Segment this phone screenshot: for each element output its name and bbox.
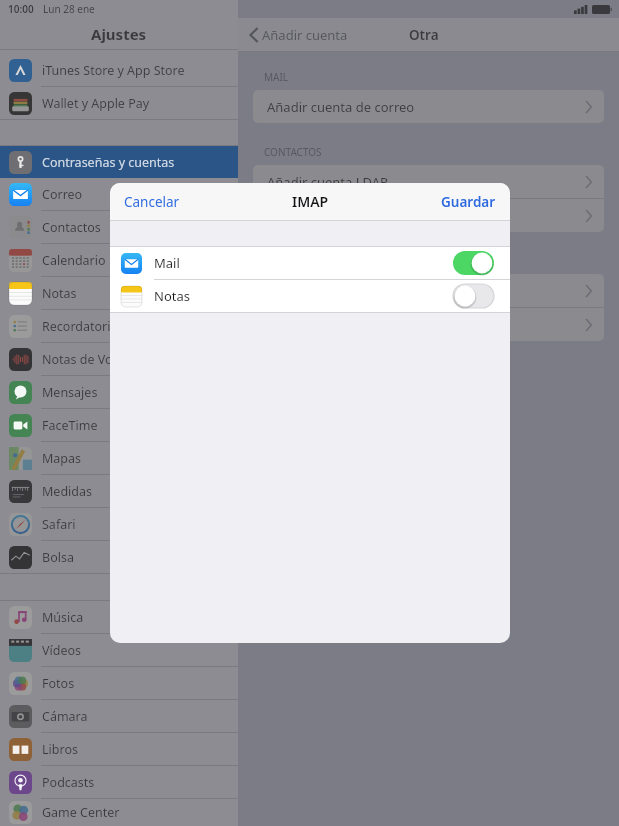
staticText: Notas bbox=[154, 287, 190, 305]
staticText: Otra bbox=[409, 26, 439, 44]
button[interactable]: Añadir calendario suscrito bbox=[253, 308, 604, 341]
button[interactable]: Contraseñas y cuentas bbox=[0, 146, 238, 178]
staticText: Wallet y Apple Pay bbox=[42, 95, 150, 112]
button[interactable]: Bolsa bbox=[0, 541, 238, 573]
button[interactable]: Libros bbox=[0, 733, 238, 765]
staticText: Fotos bbox=[42, 675, 75, 692]
staticText: Música bbox=[42, 609, 84, 626]
staticText: Notas bbox=[42, 285, 77, 302]
button[interactable]: Podcasts bbox=[0, 766, 238, 798]
staticText: Contraseñas y cuentas bbox=[42, 154, 175, 171]
staticText: FaceTime bbox=[42, 417, 98, 434]
staticText: Vídeos bbox=[42, 642, 82, 659]
staticText: Mapas bbox=[42, 450, 82, 467]
button[interactable]: Fotos bbox=[0, 667, 238, 699]
button[interactable]: Añadir cuenta LDAP bbox=[253, 165, 604, 198]
button[interactable]: Recordatorios bbox=[0, 310, 238, 342]
button[interactable]: Cancelar bbox=[110, 186, 194, 218]
staticText: Medidas bbox=[42, 483, 92, 500]
staticText: Contactos bbox=[42, 219, 101, 236]
staticText: Mensajes bbox=[42, 384, 98, 401]
staticText: Podcasts bbox=[42, 774, 95, 791]
staticText: Añadir cuenta de correo bbox=[267, 98, 415, 116]
staticText: CONTACTOS bbox=[264, 145, 322, 159]
button[interactable]: Añadir cuenta bbox=[248, 23, 350, 47]
button[interactable]: Música bbox=[0, 601, 238, 633]
staticText: Lun 28 ene bbox=[43, 2, 95, 16]
button[interactable]: Mensajes bbox=[0, 376, 238, 408]
button[interactable]: Mapas bbox=[0, 442, 238, 474]
staticText: Notas de Voz bbox=[42, 351, 119, 368]
button[interactable]: Vídeos bbox=[0, 634, 238, 666]
button[interactable]: iTunes Store y App Store bbox=[0, 54, 238, 86]
button[interactable]: Game Center bbox=[0, 799, 238, 826]
button[interactable]: Correo bbox=[0, 178, 238, 210]
button[interactable]: Safari bbox=[0, 508, 238, 540]
staticText: Añadir cuenta LDAP bbox=[267, 173, 388, 191]
button[interactable]: Calendario bbox=[0, 244, 238, 276]
staticText: Calendario bbox=[42, 252, 106, 269]
staticText: Recordatorios bbox=[42, 318, 125, 335]
staticText: Correo bbox=[42, 186, 83, 203]
button[interactable]: Cámara bbox=[0, 700, 238, 732]
button[interactable]: Añadir cuenta de correo bbox=[253, 90, 604, 123]
staticText: Cancelar bbox=[124, 193, 180, 211]
other: Toggle bbox=[453, 284, 494, 308]
staticText: MAIL bbox=[264, 70, 289, 84]
staticText: Guardar bbox=[441, 193, 496, 211]
other: Toggle bbox=[453, 251, 494, 275]
button[interactable]: Medidas bbox=[0, 475, 238, 507]
button[interactable]: Mail bbox=[110, 247, 510, 279]
staticText: 10:00 bbox=[8, 2, 34, 16]
staticText: Game Center bbox=[42, 804, 120, 821]
staticText: Añadir cuenta bbox=[262, 26, 348, 44]
button[interactable]: Notas de Voz bbox=[0, 343, 238, 375]
button[interactable]: Notas bbox=[110, 280, 510, 312]
button[interactable]: Añadir cuenta CardDAV bbox=[253, 199, 604, 232]
button[interactable]: Contactos bbox=[0, 211, 238, 243]
button[interactable]: Guardar bbox=[427, 186, 510, 218]
staticText: Ajustes bbox=[91, 24, 147, 44]
staticText: Bolsa bbox=[42, 549, 74, 566]
staticText: Añadir cuenta CardDAV bbox=[267, 207, 410, 225]
staticText: Safari bbox=[42, 516, 76, 533]
staticText: iTunes Store y App Store bbox=[42, 62, 185, 79]
button[interactable]: Wallet y Apple Pay bbox=[0, 87, 238, 119]
staticText: IMAP bbox=[292, 192, 329, 211]
button[interactable]: Notas bbox=[0, 277, 238, 309]
staticText: Libros bbox=[42, 741, 78, 758]
button[interactable]: FaceTime bbox=[0, 409, 238, 441]
button[interactable]: Añadir cuenta CalDAV bbox=[253, 274, 604, 307]
staticText: Cámara bbox=[42, 708, 88, 725]
staticText: Mail bbox=[154, 254, 180, 272]
